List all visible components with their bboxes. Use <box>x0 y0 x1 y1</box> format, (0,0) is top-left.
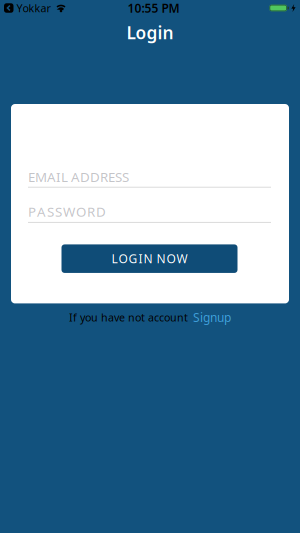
staticText: Login <box>126 21 173 44</box>
staticText: If you have not account <box>69 310 188 324</box>
staticText: Signup <box>193 309 231 325</box>
staticText: EMAIL ADDRESS <box>28 168 129 186</box>
staticText: Yokkar <box>16 1 50 15</box>
staticText: L O G I N N O W <box>111 251 187 267</box>
staticText: P A S S W O R D <box>28 203 106 220</box>
staticText: 10:55 PM <box>127 0 179 16</box>
